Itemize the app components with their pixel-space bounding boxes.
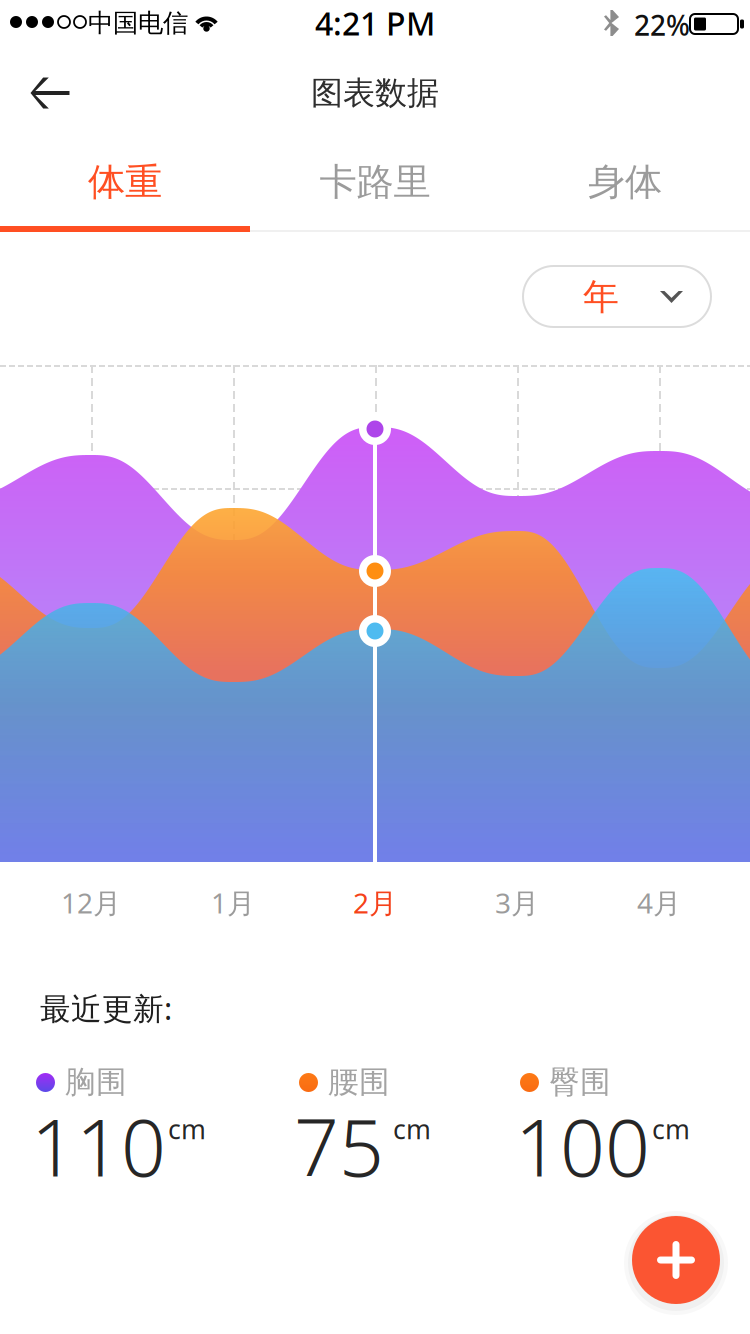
- staticText: 卡路里: [319, 159, 430, 205]
- staticText: 4:21 PM: [315, 2, 435, 44]
- staticText: 最近更新:: [40, 988, 172, 1028]
- button[interactable]: Back: [0, 54, 100, 132]
- staticText: 中国电信: [88, 7, 188, 38]
- staticText: cm: [393, 1111, 431, 1147]
- button[interactable]: Add: [621, 1205, 731, 1315]
- staticText: cm: [652, 1111, 690, 1147]
- staticText: 身体: [588, 159, 662, 205]
- staticText: 胸围: [65, 1063, 127, 1101]
- staticText: 75: [294, 1094, 384, 1198]
- staticText: 年: [583, 275, 619, 319]
- staticText: 110: [31, 1094, 166, 1198]
- button[interactable]: 身体: [500, 132, 750, 232]
- staticText: 腰围: [328, 1063, 390, 1101]
- staticText: 3月: [495, 884, 539, 921]
- staticText: 2月: [353, 884, 397, 921]
- staticText: 100: [515, 1094, 650, 1198]
- button[interactable]: 体重: [0, 132, 250, 232]
- staticText: 体重: [88, 159, 162, 205]
- staticText: 1月: [211, 884, 255, 921]
- staticText: cm: [168, 1111, 206, 1147]
- button[interactable]: Year: [523, 266, 711, 327]
- staticText: 22%: [634, 6, 690, 44]
- staticText: 4月: [637, 884, 681, 921]
- staticText: 12月: [61, 884, 121, 921]
- staticText: 图表数据: [311, 73, 439, 113]
- staticText: 臀围: [549, 1063, 611, 1101]
- button[interactable]: 卡路里: [250, 132, 500, 232]
